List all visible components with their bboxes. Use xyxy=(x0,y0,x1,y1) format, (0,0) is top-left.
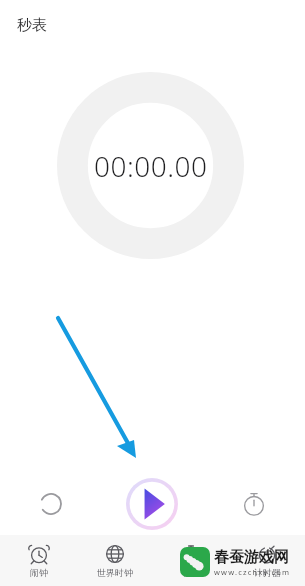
button[interactable]: 秒表 xyxy=(153,535,229,586)
button[interactable]: 世界时钟 xyxy=(77,535,153,586)
staticText: 秒表 xyxy=(17,16,47,35)
staticText: 世界时钟 xyxy=(97,567,133,578)
button[interactable]: Start xyxy=(101,476,203,532)
staticText: 00:00.00 xyxy=(94,147,208,185)
button[interactable]: Lap xyxy=(203,476,305,532)
staticText: 春蚕游戏网 xyxy=(214,548,289,567)
staticText: 闹钟 xyxy=(30,567,48,578)
button[interactable]: Reset xyxy=(0,476,101,532)
button[interactable]: 计时器 xyxy=(229,535,305,586)
button[interactable]: 闹钟 xyxy=(0,535,77,586)
staticText: 秒表 xyxy=(182,567,200,578)
staticText: www.czchxy.com xyxy=(214,567,291,577)
staticText: 计时器 xyxy=(254,567,281,578)
